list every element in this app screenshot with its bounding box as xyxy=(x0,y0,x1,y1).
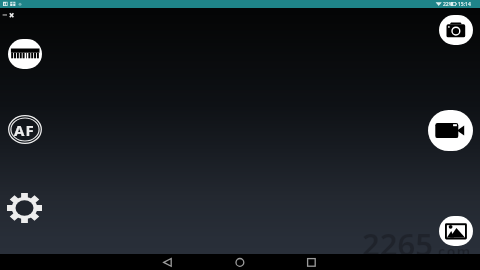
staticText: com xyxy=(438,242,472,261)
staticText: 22% xyxy=(443,1,453,8)
button[interactable]: Ruler xyxy=(8,39,42,69)
button[interactable]: Gallery xyxy=(439,216,473,246)
button[interactable]: Record video xyxy=(428,110,473,151)
button[interactable]: Settings xyxy=(7,193,42,223)
staticText: AF xyxy=(14,120,36,140)
staticText: 2265 xyxy=(362,223,433,265)
staticText: 15:14 xyxy=(458,1,471,8)
button[interactable]: Auto focus xyxy=(8,115,42,144)
button[interactable]: Take photo xyxy=(439,15,473,45)
